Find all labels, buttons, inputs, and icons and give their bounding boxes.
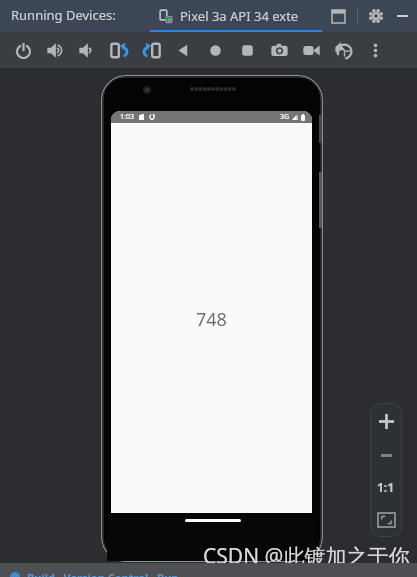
staticText: Running Devices: — [11, 6, 116, 24]
button[interactable]: Minimize — [389, 3, 415, 29]
button[interactable]: Volume down — [71, 32, 103, 68]
staticText: 3G — [280, 112, 290, 122]
staticText: Pixel 3a API 34 exte — [180, 7, 299, 25]
staticText: 1:03 — [120, 112, 134, 122]
staticText: CSDN @此镀加之于你 — [203, 542, 410, 571]
button[interactable]: Settings — [363, 3, 389, 29]
button[interactable]: Overview — [231, 32, 263, 68]
staticText: Build Version Control Run — [27, 570, 179, 577]
button[interactable]: Record screen — [295, 32, 327, 68]
button[interactable]: Pixel 3a API 34 exte — [150, 0, 299, 32]
button[interactable]: Snapshots — [327, 32, 359, 68]
button[interactable]: 1:1 — [370, 471, 402, 503]
button[interactable]: Back — [167, 32, 199, 68]
button[interactable]: Zoom in — [370, 403, 402, 439]
button[interactable]: Power — [7, 32, 39, 68]
button[interactable]: Home — [199, 32, 231, 68]
button[interactable]: More — [359, 32, 391, 68]
staticText: 748 — [196, 307, 227, 332]
button[interactable]: Fit to screen — [370, 503, 402, 537]
button[interactable]: Window mode — [325, 3, 351, 29]
button[interactable]: Zoom out — [370, 439, 402, 471]
button[interactable]: Rotate right — [135, 32, 167, 68]
button[interactable]: Build Version Control Run — [0, 568, 179, 577]
button[interactable]: Screenshot — [263, 32, 295, 68]
button[interactable]: Rotate left — [103, 32, 135, 68]
button[interactable]: Volume up — [39, 32, 71, 68]
staticText: 1:1 — [377, 479, 395, 495]
